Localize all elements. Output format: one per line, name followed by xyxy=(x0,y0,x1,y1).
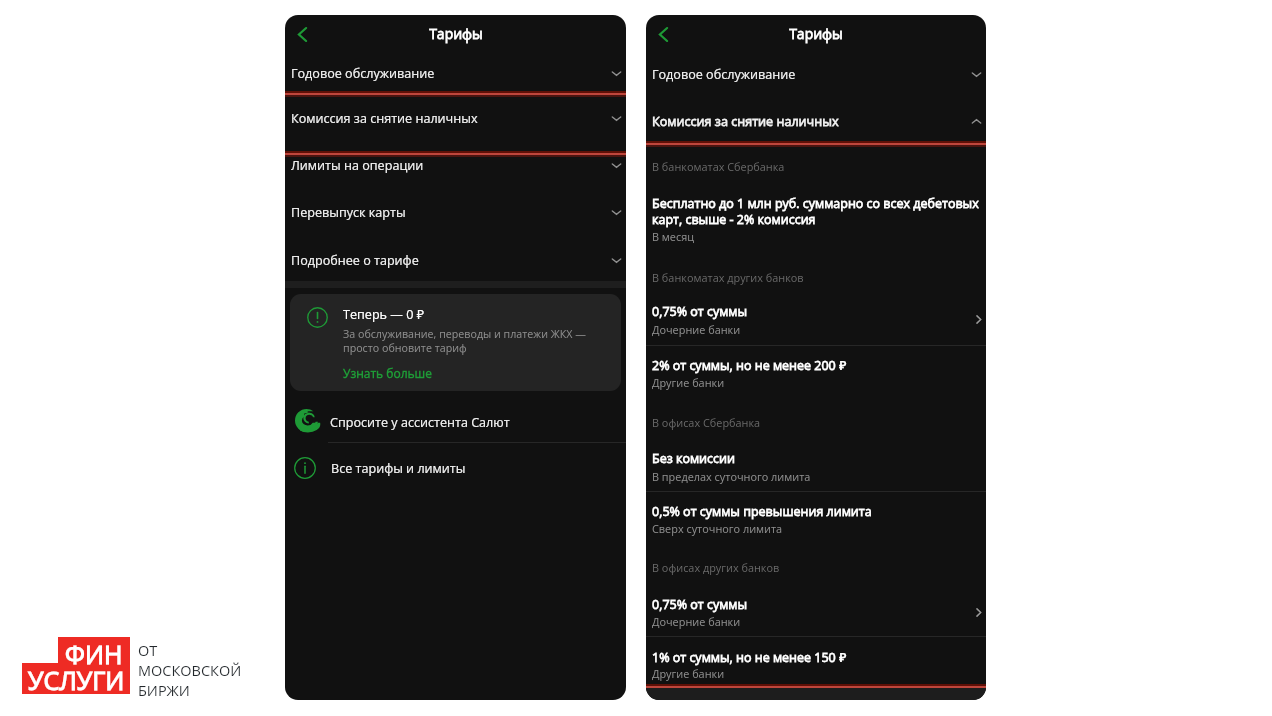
staticText: Без комиссии xyxy=(652,450,962,467)
button[interactable]: 0,75% от суммы xyxy=(646,586,986,634)
button[interactable]: 1% от суммы, но не менее 150 ₽ xyxy=(646,639,986,686)
button[interactable]: Лимиты на операции xyxy=(285,155,626,202)
staticText: В банкоматах Сбербанка xyxy=(652,159,785,174)
staticText: Годовое обслуживание xyxy=(652,66,796,83)
staticText: В банкоматах других банков xyxy=(652,270,804,285)
staticText: В офисах Сбербанка xyxy=(652,415,761,430)
button[interactable]: Комиссия за снятие наличных xyxy=(285,95,626,153)
staticText: Узнать больше xyxy=(343,365,433,381)
staticText: Подробнее о тарифе xyxy=(291,252,419,269)
button[interactable]: Все тарифы и лимиты xyxy=(285,444,626,488)
staticText: Бесплатно до 1 млн руб. суммарно со всех… xyxy=(652,195,980,228)
button[interactable]: Бесплатно до 1 млн руб. суммарно со всех… xyxy=(646,187,986,243)
staticText: Спросите у ассистента Салют xyxy=(330,414,510,431)
staticText: 0,75% от суммы xyxy=(652,303,962,320)
staticText: За обслуживание, переводы и платежи ЖКХ … xyxy=(343,327,593,355)
button[interactable]: Без комиссии xyxy=(646,440,986,489)
button[interactable]: Годовое обслуживание xyxy=(285,47,626,93)
staticText: 2% от суммы, но не менее 200 ₽ xyxy=(652,357,962,374)
button[interactable]: Комиссия за снятие наличных xyxy=(646,101,986,143)
staticText: Комиссия за снятие наличных xyxy=(291,110,478,127)
staticText: В пределах суточного лимита xyxy=(652,469,811,484)
button[interactable]: Теперь — 0 ₽ xyxy=(290,294,621,391)
staticText: Тарифы xyxy=(789,24,843,43)
staticText: Все тарифы и лимиты xyxy=(331,460,466,477)
button[interactable]: 2% от суммы, но не менее 200 ₽ xyxy=(646,347,986,395)
staticText: Лимиты на операции xyxy=(291,157,424,174)
staticText: УСЛУГИ xyxy=(28,663,125,697)
staticText: Другие банки xyxy=(652,666,725,681)
staticText: Годовое обслуживание xyxy=(291,65,435,82)
staticText: Перевыпуск карты xyxy=(291,204,406,221)
staticText: 0,75% от суммы xyxy=(652,596,962,613)
button[interactable]: 0,5% от суммы превышения лимита xyxy=(646,493,986,541)
staticText: БИРЖИ xyxy=(138,681,190,701)
staticText: ФИН xyxy=(65,637,123,671)
staticText: В офисах других банков xyxy=(652,560,780,575)
button[interactable]: 0,75% от суммы xyxy=(646,293,986,342)
staticText: 0,5% от суммы превышения лимита xyxy=(652,503,962,520)
staticText: МОСКОВСКОЙ xyxy=(138,661,242,681)
button[interactable]: Перевыпуск карты xyxy=(285,202,626,249)
staticText: Дочерние банки xyxy=(652,322,741,337)
button[interactable]: Назад xyxy=(646,16,681,52)
button[interactable]: Спросите у ассистента Салют xyxy=(285,398,626,442)
staticText: Тарифы xyxy=(429,24,483,43)
staticText: 1% от суммы, но не менее 150 ₽ xyxy=(652,649,962,666)
staticText: Дочерние банки xyxy=(652,614,741,629)
button[interactable]: Назад xyxy=(285,16,320,52)
staticText: Теперь — 0 ₽ xyxy=(343,306,424,323)
button[interactable]: Годовое обслуживание xyxy=(646,48,986,93)
staticText: Сверх суточного лимита xyxy=(652,521,783,536)
staticText: Комиссия за снятие наличных xyxy=(652,113,839,130)
staticText: В месяц xyxy=(652,229,695,244)
button[interactable]: Подробнее о тарифе xyxy=(285,249,626,292)
staticText: ОТ xyxy=(138,641,158,661)
staticText: Другие банки xyxy=(652,375,725,390)
